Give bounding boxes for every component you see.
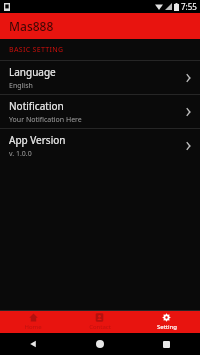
staticText: App Version: [9, 133, 66, 147]
staticText: English: [9, 81, 33, 91]
other: Home: [96, 340, 104, 348]
staticText: Language: [9, 65, 56, 79]
staticText: Notification: [9, 99, 64, 113]
staticText: Setting: [157, 323, 177, 331]
staticText: BASIC SETTING: [9, 45, 64, 55]
staticText: Mas888: [9, 18, 54, 34]
button[interactable]: Home: [0, 311, 66, 333]
staticText: Your Notification Here: [9, 115, 82, 125]
button[interactable]: Contact: [66, 311, 133, 333]
button[interactable]: Notification: [0, 95, 200, 128]
button[interactable]: App Version: [0, 129, 200, 162]
button[interactable]: Language: [0, 61, 200, 94]
other: Recents: [163, 341, 170, 348]
staticText: 7:55: [181, 1, 197, 12]
staticText: Home: [24, 323, 42, 331]
other: Back: [29, 340, 37, 348]
staticText: Contact: [89, 323, 111, 331]
button[interactable]: Setting: [133, 311, 200, 333]
staticText: v. 1.0.0: [9, 149, 32, 159]
